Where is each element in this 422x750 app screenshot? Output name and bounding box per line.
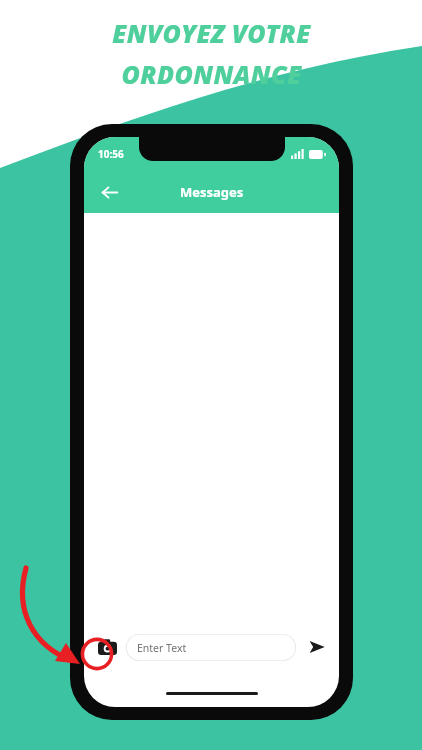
button[interactable]: Back: [92, 175, 126, 209]
staticText: ENVOYEZ VOTRE ORDONNANCE: [112, 16, 311, 92]
staticText: Messages: [180, 183, 244, 201]
button[interactable]: Send: [305, 635, 329, 659]
button[interactable]: Enter Text: [126, 634, 296, 661]
staticText: Enter Text: [137, 641, 187, 655]
button[interactable]: Camera: [94, 634, 120, 660]
staticText: 10:56: [98, 147, 124, 161]
